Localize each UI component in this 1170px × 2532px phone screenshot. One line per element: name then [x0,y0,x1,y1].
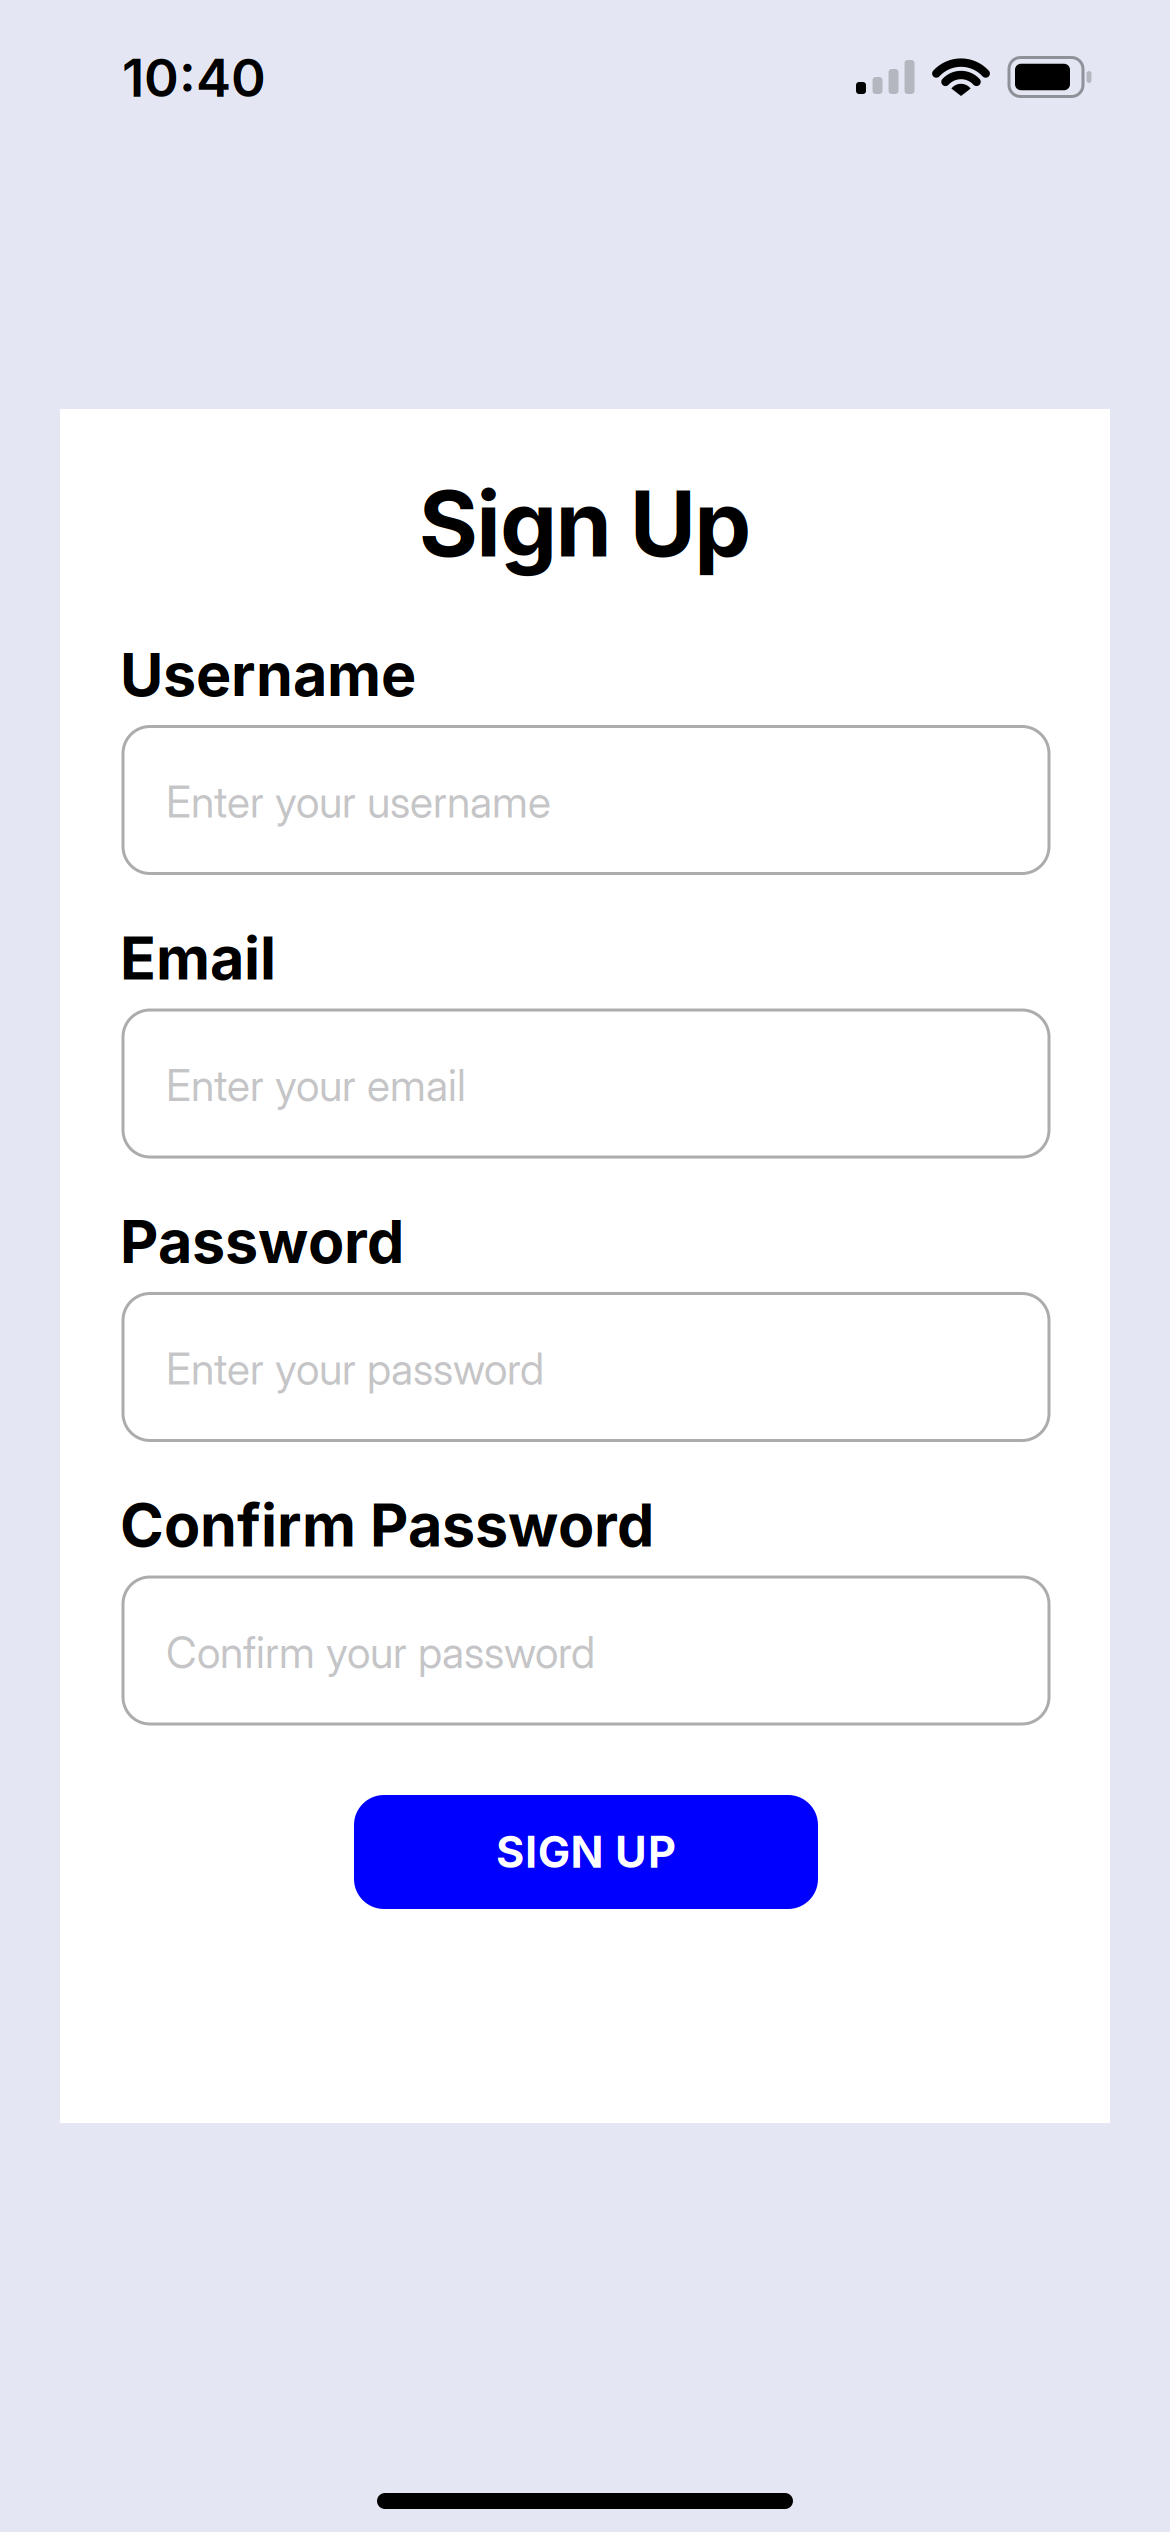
staticText: Sign Up [419,469,751,578]
staticText: 10:40 [122,46,266,110]
staticText: Username [120,639,416,710]
staticText: Email [120,922,276,994]
staticText: SIGN UP [496,1826,676,1878]
button[interactable]: SIGN UP [354,1795,818,1909]
staticText: Enter your username [166,776,551,828]
staticText: Confirm your password [166,1627,595,1678]
staticText: Enter your email [166,1060,466,1111]
staticText: Enter your password [166,1343,544,1395]
staticText: Confirm Password [120,1489,654,1561]
staticText: Password [120,1206,404,1277]
